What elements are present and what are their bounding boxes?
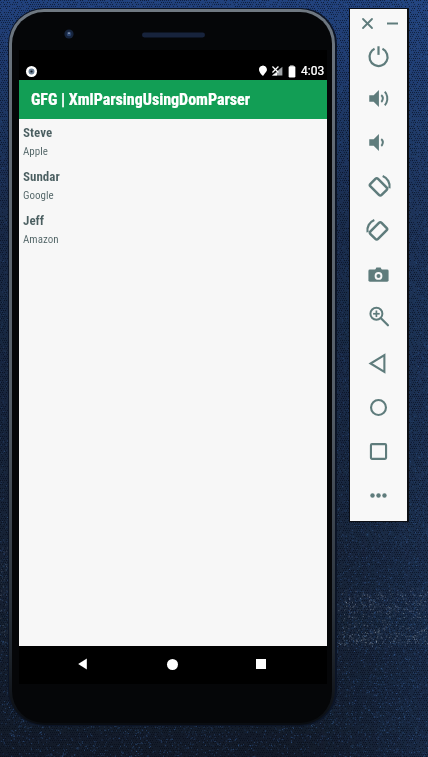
staticText: Jeff bbox=[23, 213, 45, 228]
button[interactable]: Rotate right bbox=[368, 220, 389, 241]
staticText: Apple bbox=[23, 145, 48, 158]
staticText: Sundar bbox=[23, 169, 60, 184]
button[interactable]: Screenshot bbox=[368, 265, 389, 286]
button[interactable]: Power bbox=[368, 45, 389, 66]
button[interactable]: Minimize bbox=[382, 13, 402, 33]
button[interactable]: Jeff bbox=[19, 207, 327, 251]
button[interactable]: Back bbox=[368, 353, 389, 374]
button[interactable]: GFG | XmlParsingUsingDomParser bbox=[19, 80, 327, 119]
staticText: GFG | XmlParsingUsingDomParser bbox=[31, 90, 251, 109]
button[interactable]: Close bbox=[357, 13, 377, 33]
button[interactable]: Volume up bbox=[368, 88, 389, 109]
button[interactable]: Recents bbox=[248, 651, 274, 677]
button[interactable]: Zoom bbox=[368, 306, 389, 327]
staticText: Steve bbox=[23, 125, 53, 140]
button[interactable]: Steve bbox=[19, 119, 327, 163]
staticText: Amazon bbox=[23, 233, 59, 246]
button[interactable]: Overview bbox=[368, 441, 389, 462]
button[interactable]: Volume down bbox=[368, 132, 389, 153]
button[interactable]: More bbox=[368, 485, 389, 506]
button[interactable]: Rotate left bbox=[368, 176, 389, 197]
button[interactable]: Home bbox=[159, 651, 185, 677]
button[interactable]: Back bbox=[70, 651, 96, 677]
button[interactable]: Sundar bbox=[19, 163, 327, 207]
staticText: Google bbox=[23, 189, 54, 202]
staticText: 4:03 bbox=[301, 64, 325, 78]
button[interactable]: Home bbox=[368, 397, 389, 418]
